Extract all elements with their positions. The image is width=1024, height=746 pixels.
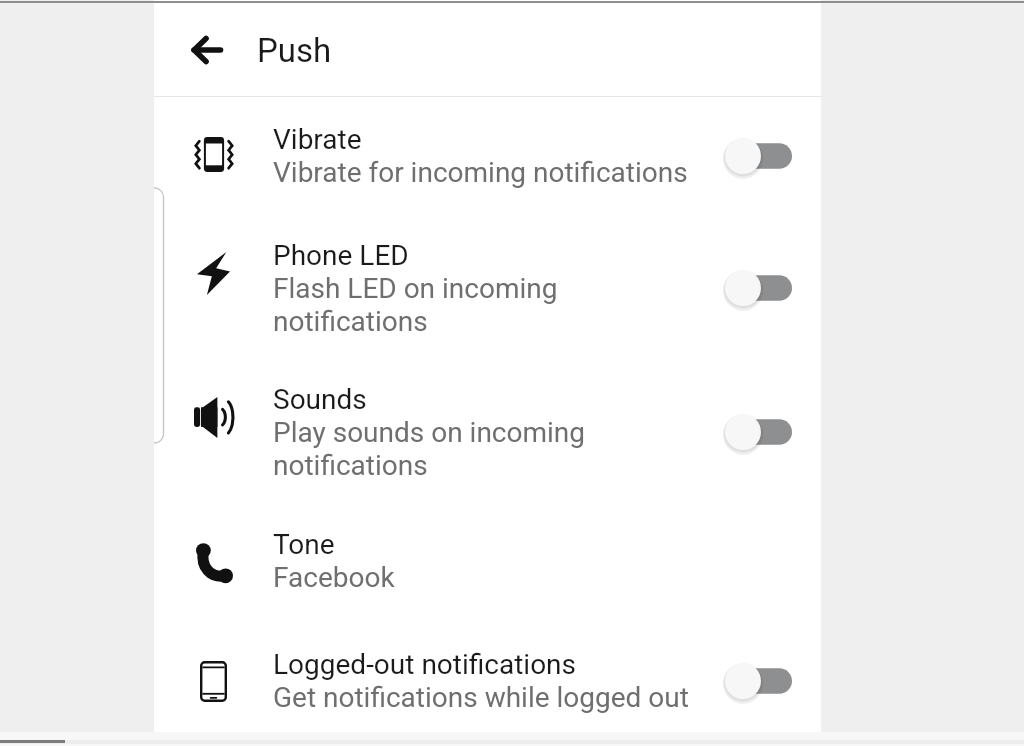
button[interactable]: Navigate up	[176, 19, 238, 81]
button[interactable]: Logged-out notifications switch	[703, 619, 821, 742]
staticText: Sounds	[273, 383, 367, 416]
button[interactable]: Vibrate switch	[703, 97, 821, 215]
staticText: Tone	[273, 528, 335, 561]
staticText: Play sounds on incoming notifications	[273, 416, 703, 482]
button[interactable]: Phone LED	[154, 215, 821, 361]
button[interactable]: Sounds switch	[703, 361, 821, 503]
button[interactable]: Vibrate	[154, 97, 821, 215]
staticText: Vibrate for incoming notifications	[273, 156, 688, 189]
staticText: Push	[257, 31, 332, 70]
button[interactable]: Logged-out notifications	[154, 619, 821, 742]
button[interactable]: Phone LED switch	[703, 215, 821, 361]
button[interactable]: Sounds	[154, 361, 821, 503]
button[interactable]: Tone	[154, 503, 821, 619]
staticText: Vibrate	[273, 123, 362, 156]
staticText: Flash LED on incoming notifications	[273, 272, 703, 338]
staticText: Logged-out notifications	[273, 648, 577, 681]
staticText: Phone LED	[273, 239, 409, 272]
staticText: Get notifications while logged out	[273, 681, 689, 714]
staticText: Facebook	[273, 561, 395, 594]
